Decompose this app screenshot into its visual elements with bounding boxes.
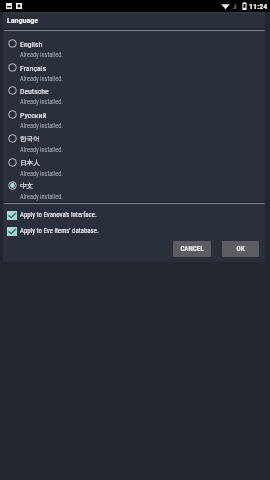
button[interactable]: Apply to Eve items' database. <box>0 224 270 238</box>
other: Wi-Fi <box>221 2 230 10</box>
other: Save notification <box>16 3 22 9</box>
button[interactable]: Deutsche <box>0 84 270 108</box>
staticText: 11:24 <box>249 2 268 11</box>
staticText: Already installed. <box>20 146 63 153</box>
staticText: Already installed. <box>20 98 63 105</box>
staticText: Apply to Eve items' database. <box>20 227 99 235</box>
button[interactable]: 한국어 <box>0 132 270 156</box>
other: Battery <box>242 2 247 10</box>
staticText: Already installed. <box>20 170 63 177</box>
staticText: 中文 <box>20 182 34 190</box>
staticText: Русский <box>20 111 47 120</box>
button[interactable]: 日本人 <box>0 156 270 180</box>
staticText: Apply to Evanova's interface. <box>20 211 97 219</box>
staticText: OK <box>236 245 245 253</box>
staticText: Already installed. <box>20 75 63 82</box>
button[interactable]: Apply to Evanova's interface. <box>0 208 270 222</box>
button[interactable]: 中文 <box>0 179 270 203</box>
button[interactable]: CANCEL <box>173 241 211 257</box>
staticText: Already installed. <box>20 122 63 129</box>
staticText: Already installed. <box>20 51 63 58</box>
staticText: 日本人 <box>20 159 40 167</box>
staticText: Deutsche <box>20 87 49 96</box>
button[interactable]: Français <box>0 61 270 85</box>
staticText: 한국어 <box>20 135 40 143</box>
staticText: CANCEL <box>180 245 204 253</box>
button[interactable]: OK <box>222 241 259 257</box>
button[interactable]: Русский <box>0 108 270 132</box>
staticText: English <box>20 40 43 49</box>
staticText: Français <box>20 64 47 73</box>
staticText: Language <box>7 16 39 25</box>
other: Screenshot notification <box>6 3 12 9</box>
staticText: Already installed. <box>20 193 63 200</box>
button[interactable]: English <box>0 37 270 61</box>
other: Signal <box>232 2 237 10</box>
